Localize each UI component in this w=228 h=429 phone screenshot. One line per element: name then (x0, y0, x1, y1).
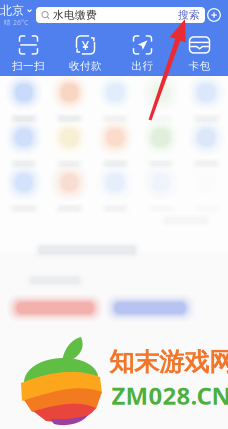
staticText: 晴 26°C (4, 18, 28, 27)
staticText: 水电缴费 (53, 8, 97, 21)
staticText: 搜索 (178, 8, 200, 21)
button[interactable]: 出行 (114, 36, 171, 72)
staticText: ZM028.CN (111, 380, 228, 411)
button[interactable]: 卡包 (171, 36, 228, 72)
staticText: 知末游戏网 (109, 346, 228, 378)
staticText: 扫一扫 (12, 59, 45, 72)
staticText: 北京 (0, 3, 24, 18)
button[interactable]: Add (207, 8, 221, 22)
button[interactable]: City Beijing (4, 5, 31, 25)
button[interactable]: 水电缴费 (36, 7, 205, 23)
staticText: 出行 (131, 59, 153, 72)
staticText: ¥ (81, 36, 89, 54)
button[interactable]: ¥ (57, 36, 114, 72)
button[interactable]: 扫一扫 (0, 36, 57, 72)
staticText: 收付款 (69, 59, 102, 72)
staticText: 卡包 (188, 59, 210, 72)
